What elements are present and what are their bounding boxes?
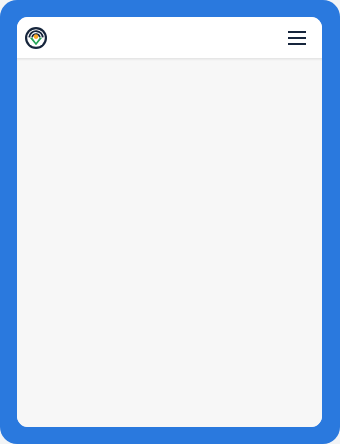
button[interactable]: Home: [24, 26, 48, 50]
button[interactable]: Menu: [284, 25, 310, 51]
